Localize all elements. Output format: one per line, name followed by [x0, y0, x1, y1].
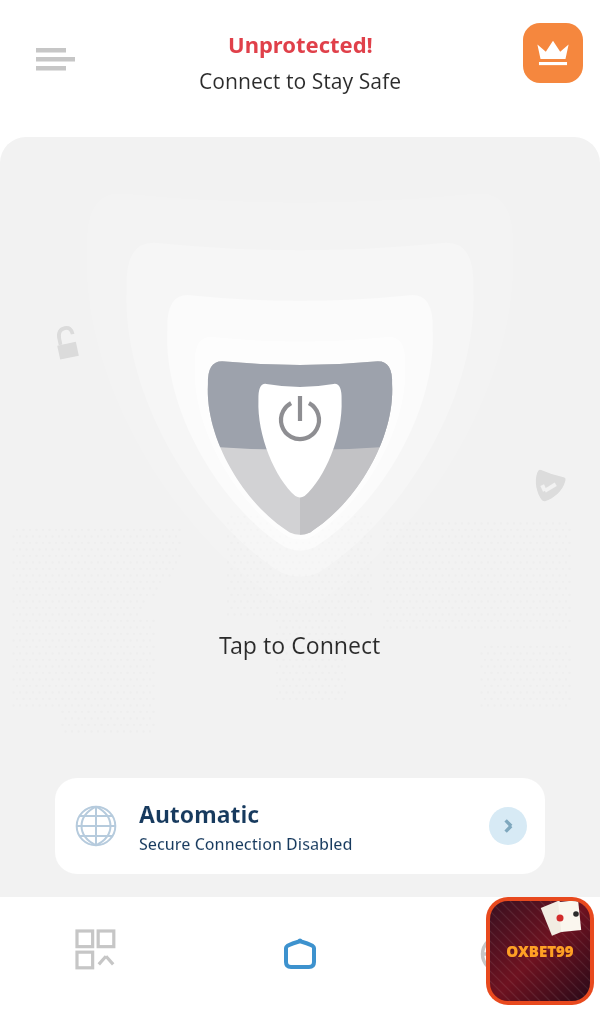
button[interactable]: Settings [400, 897, 600, 1011]
button[interactable]: Tap to Connect [0, 137, 600, 697]
button[interactable]: Premium [523, 23, 583, 83]
staticText: OXBET99 [506, 941, 574, 961]
button[interactable]: Advertisement OXBET99 [490, 901, 590, 1001]
staticText: Connect to Stay Safe [199, 67, 402, 96]
button[interactable]: Home [200, 897, 400, 1011]
staticText: Unprotected! [228, 29, 373, 59]
button[interactable]: Menu [22, 32, 84, 78]
button[interactable]: Apps [0, 897, 200, 1011]
button[interactable]: Automatic [55, 778, 545, 874]
staticText: Secure Connection Disabled [139, 833, 353, 855]
staticText: Automatic [139, 798, 260, 829]
staticText: Tap to Connect [219, 629, 381, 660]
